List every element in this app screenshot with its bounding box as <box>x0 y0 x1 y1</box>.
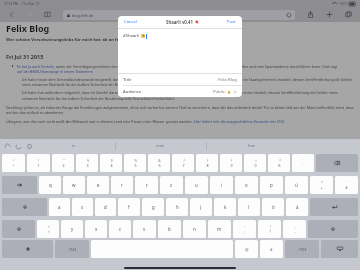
button[interactable]: u <box>185 176 208 194</box>
button[interactable]: c <box>109 220 131 238</box>
staticText: k <box>224 204 227 210</box>
button[interactable]: h <box>166 198 188 216</box>
button[interactable]: blog.fefe.de <box>63 10 295 20</box>
button[interactable]: Bookmarks <box>42 9 53 20</box>
button[interactable]: Shift <box>2 220 35 238</box>
button[interactable]: % <box>124 154 146 172</box>
staticText: l <box>248 204 250 210</box>
button[interactable]: Post <box>226 18 237 26</box>
button[interactable]: ö <box>262 198 284 216</box>
staticText: blog.fefe.de <box>72 13 94 18</box>
button[interactable]: z <box>160 176 183 194</box>
button[interactable]: q <box>39 176 61 194</box>
staticText: #Shaarli <box>123 33 140 39</box>
button[interactable]: r <box>111 176 133 194</box>
staticText: c <box>119 226 122 232</box>
button[interactable]: m <box>208 220 231 238</box>
button[interactable]: Hash <box>260 240 283 258</box>
button[interactable]: Share <box>305 9 316 20</box>
button[interactable]: " <box>52 154 74 172</box>
button[interactable]: g <box>142 198 164 216</box>
button[interactable]: s <box>72 198 93 216</box>
button[interactable]: Backspace <box>316 154 358 172</box>
button[interactable]: Hide keyboard <box>321 240 358 258</box>
staticText: 4 <box>110 163 113 168</box>
button[interactable]: ' <box>335 176 358 194</box>
button[interactable]: New Tab <box>324 9 335 20</box>
button[interactable]: w <box>63 176 85 194</box>
staticText: p <box>270 182 273 188</box>
button[interactable]: / <box>172 154 194 172</box>
staticText: Übrigens, wer das noch nicht weiß: Am Mi… <box>6 119 194 124</box>
button[interactable]: > <box>37 220 59 238</box>
staticText: ! <box>38 158 39 162</box>
button[interactable]: $ <box>100 154 122 172</box>
button[interactable]: _ <box>283 220 306 238</box>
button[interactable]: Undo <box>4 143 10 149</box>
staticText: 1 <box>37 163 40 168</box>
button[interactable]: Tabs <box>343 9 354 20</box>
button[interactable]: Back <box>6 9 17 20</box>
button[interactable]: Paste <box>26 143 32 149</box>
button[interactable]: ( <box>196 154 218 172</box>
staticText: t <box>146 182 148 188</box>
button[interactable]: Tab <box>2 176 37 194</box>
button[interactable]: d <box>95 198 116 216</box>
button[interactable]: ! <box>27 154 50 172</box>
button[interactable]: ? <box>268 154 290 172</box>
staticText: z <box>170 182 173 188</box>
button[interactable]: ä <box>286 198 308 216</box>
button[interactable]: Emoji <box>2 240 53 258</box>
button[interactable]: Redo <box>15 143 21 149</box>
button[interactable]: f <box>118 198 140 216</box>
button[interactable]: Audience <box>118 86 242 97</box>
staticText: auf der BMVI-Homepage in einem Statement <box>17 69 93 74</box>
button[interactable]: At sign <box>235 240 258 258</box>
button[interactable]: n <box>183 220 206 238</box>
button[interactable]: #Shaarli <box>118 29 242 73</box>
button[interactable]: ) <box>220 154 242 172</box>
button[interactable]: ! <box>258 220 281 238</box>
staticText: ` <box>303 158 304 162</box>
button[interactable]: b <box>158 220 181 238</box>
button[interactable]: Title <box>118 74 242 85</box>
button[interactable]: i <box>210 176 233 194</box>
button[interactable]: ° <box>2 154 25 172</box>
button[interactable]: .?123 <box>55 240 89 258</box>
button[interactable]: § <box>76 154 98 172</box>
button[interactable]: ü <box>285 176 308 194</box>
staticText: .?123 <box>298 247 307 252</box>
button[interactable]: : <box>233 220 256 238</box>
button[interactable]: x <box>85 220 107 238</box>
staticText: $ <box>111 158 113 162</box>
button[interactable]: Return <box>310 198 358 216</box>
button[interactable]: t <box>135 176 158 194</box>
button[interactable]: .?123 <box>285 240 319 258</box>
button[interactable]: l <box>238 198 260 216</box>
button[interactable]: Cancel <box>123 18 139 26</box>
button[interactable]: k <box>214 198 236 216</box>
staticText: ? <box>279 158 281 162</box>
staticText: Public <box>213 89 225 95</box>
button[interactable]: ` <box>292 154 314 172</box>
staticText: m <box>217 226 222 232</box>
staticText: r <box>121 182 123 188</box>
button[interactable]: o <box>235 176 258 194</box>
button[interactable]: v <box>133 220 156 238</box>
staticText: Hier liefert sich die ausgeschlafene Ver… <box>194 119 285 124</box>
button[interactable]: Caps Lock <box>2 198 47 216</box>
button[interactable]: y <box>61 220 83 238</box>
button[interactable]: p <box>260 176 283 194</box>
button[interactable]: Shift <box>308 220 358 238</box>
staticText: 8 <box>206 163 209 168</box>
button[interactable]: & <box>148 154 170 172</box>
button[interactable]: = <box>244 154 266 172</box>
staticText: Thu Mar 19 <box>22 2 40 6</box>
staticText: % <box>134 158 137 162</box>
button[interactable]: a <box>49 198 70 216</box>
button[interactable]: j <box>190 198 212 216</box>
button[interactable]: e <box>87 176 109 194</box>
button[interactable]: * <box>310 176 333 194</box>
